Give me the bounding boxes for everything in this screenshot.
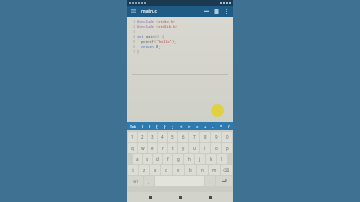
button[interactable]: Undo <box>203 8 210 15</box>
button[interactable]: 7 <box>189 132 199 142</box>
button[interactable]: u <box>189 143 199 153</box>
button[interactable]: ) <box>146 122 153 130</box>
staticText: r <box>162 145 164 151</box>
staticText: 3 <box>130 30 135 34</box>
staticText: 1 <box>131 134 134 140</box>
button[interactable]: Save <box>213 8 220 15</box>
staticText: / <box>228 124 230 129</box>
button[interactable]: y <box>178 143 188 153</box>
staticText: i <box>204 145 206 151</box>
staticText: p <box>226 145 229 151</box>
button[interactable]: } <box>161 122 169 130</box>
button[interactable]: j <box>195 154 205 164</box>
button[interactable]: g <box>173 154 183 164</box>
button[interactable]: t <box>168 143 177 153</box>
button[interactable]: 5 <box>168 132 177 142</box>
staticText: - <box>212 124 214 129</box>
button[interactable]: w <box>138 143 147 153</box>
button[interactable]: 1 <box>128 132 137 142</box>
staticText: ⌫ <box>223 168 230 173</box>
button[interactable]: { <box>153 122 161 130</box>
button[interactable]: ⌫ <box>221 165 232 175</box>
button[interactable]: !#1 <box>128 176 143 186</box>
button[interactable]: v <box>173 165 184 175</box>
button[interactable]: o <box>211 143 221 153</box>
staticText: 2 <box>141 134 144 140</box>
staticText: w <box>141 145 145 151</box>
staticText: o <box>215 145 218 151</box>
button[interactable]: c <box>161 165 172 175</box>
button[interactable]: / <box>225 122 233 130</box>
button[interactable]: d <box>153 154 162 164</box>
button[interactable]: e <box>148 143 157 153</box>
button[interactable]: 8 <box>200 132 210 142</box>
button[interactable]: x <box>150 165 160 175</box>
staticText: 4 <box>130 35 135 39</box>
button[interactable]: 4 <box>158 132 167 142</box>
button[interactable]: ; <box>169 122 177 130</box>
button[interactable]: q <box>128 143 137 153</box>
button[interactable]: a <box>133 154 142 164</box>
button[interactable]: Enter <box>216 176 232 186</box>
button[interactable]: b <box>185 165 196 175</box>
button[interactable]: Open navigation drawer <box>130 8 137 15</box>
button[interactable]: 9 <box>211 132 221 142</box>
staticText: ); <box>172 39 177 44</box>
staticText: v <box>177 167 180 173</box>
staticText: main.c <box>141 8 157 15</box>
button[interactable]: * <box>217 122 225 130</box>
staticText: } <box>137 49 140 54</box>
button[interactable]: z <box>139 165 149 175</box>
button[interactable]: > <box>185 122 193 130</box>
button[interactable]: Tab key <box>127 122 139 130</box>
button[interactable]: 6 <box>178 132 188 142</box>
staticText: ( <box>142 124 144 129</box>
staticText: h <box>188 156 191 162</box>
button[interactable]: - <box>209 122 217 130</box>
staticText: ( <box>154 39 157 44</box>
staticText: main <box>144 34 155 39</box>
staticText: 6 <box>130 45 135 49</box>
button[interactable]: = <box>193 122 201 130</box>
staticText: ; <box>172 124 174 129</box>
button[interactable]: 3 <box>148 132 157 142</box>
button[interactable]: s <box>143 154 152 164</box>
button[interactable]: n <box>197 165 208 175</box>
button[interactable]: Run <box>211 104 224 117</box>
staticText: "hello" <box>157 39 172 44</box>
staticText: m <box>212 167 217 173</box>
staticText: { <box>156 124 158 129</box>
staticText: 1 <box>130 20 135 24</box>
button[interactable]: h <box>184 154 194 164</box>
button[interactable]: p <box>222 143 232 153</box>
button[interactable]: More options <box>223 8 230 15</box>
staticText: () <box>155 34 160 39</box>
staticText: * <box>220 124 223 129</box>
button[interactable]: Home <box>173 192 187 202</box>
staticText: 0 <box>226 134 229 140</box>
button[interactable]: i <box>200 143 210 153</box>
staticText: 9 <box>215 134 218 140</box>
staticText: ) <box>149 124 151 129</box>
button[interactable]: 0 <box>222 132 232 142</box>
button[interactable]: Back <box>143 192 157 202</box>
button[interactable]: ⇧ <box>128 165 138 175</box>
staticText: + <box>204 124 207 129</box>
button[interactable]: l <box>217 154 227 164</box>
button[interactable]: ( <box>139 122 146 130</box>
button[interactable]: r <box>158 143 167 153</box>
button[interactable]: + <box>201 122 209 130</box>
button[interactable]: < <box>177 122 185 130</box>
button[interactable]: k <box>206 154 216 164</box>
staticText: 4 <box>161 134 164 140</box>
staticText: u <box>193 145 196 151</box>
staticText: q <box>131 145 134 151</box>
staticText: 0; <box>154 44 161 49</box>
button[interactable]: m <box>209 165 220 175</box>
button[interactable]: 2 <box>138 132 147 142</box>
button[interactable]: f <box>163 154 172 164</box>
button[interactable]: Recents <box>203 192 217 202</box>
button[interactable]: Comma <box>144 176 154 186</box>
